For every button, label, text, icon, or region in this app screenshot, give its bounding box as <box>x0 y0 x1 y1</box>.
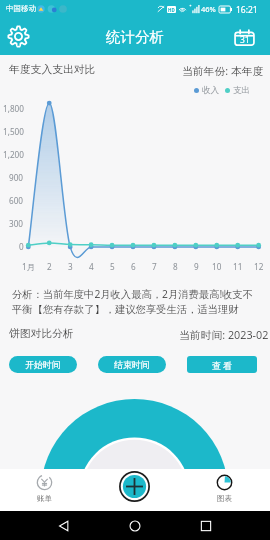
staticText: 10 <box>212 261 222 272</box>
staticText: 7 <box>152 261 157 272</box>
button[interactable]: Settings <box>7 25 30 48</box>
staticText: 9 <box>194 261 199 272</box>
button[interactable]: Back <box>56 518 72 534</box>
staticText: 饼图对比分析 <box>9 327 74 341</box>
staticText: 16:21 <box>236 4 258 16</box>
staticText: 8 <box>173 261 178 272</box>
button[interactable]: 图表 <box>205 474 244 506</box>
staticText: 900 <box>9 172 24 183</box>
button[interactable]: Recents <box>198 518 214 534</box>
staticText: HD <box>168 7 175 13</box>
staticText: 开始时间 <box>25 359 61 370</box>
staticText: 46% <box>201 4 216 14</box>
staticText: 账单 <box>37 494 52 503</box>
staticText: 中国移动 <box>6 4 36 13</box>
staticText: 年度支入支出对比 <box>9 63 96 77</box>
staticText: 4 <box>89 261 94 272</box>
button[interactable]: 结束时间 <box>98 356 166 373</box>
staticText: 300 <box>9 218 24 229</box>
staticText: 12 <box>254 261 264 272</box>
button[interactable]: Add record <box>119 471 150 502</box>
staticText: 1月 <box>22 261 35 272</box>
staticText: 0 <box>19 241 24 252</box>
staticText: 3 <box>68 261 73 272</box>
staticText: 1,500 <box>3 126 24 137</box>
staticText: 5 <box>110 261 115 272</box>
button[interactable]: 查 看 <box>187 356 257 373</box>
staticText: 图表 <box>217 494 232 503</box>
staticText: 600 <box>9 195 24 206</box>
staticText: 1,800 <box>3 103 24 114</box>
staticText: 统计分析 <box>106 28 164 46</box>
staticText: 查 看 <box>212 359 233 371</box>
button[interactable]: 账单 <box>25 474 64 506</box>
button[interactable]: 开始时间 <box>9 356 77 373</box>
button[interactable]: Calendar <box>233 28 256 48</box>
staticText: 当前时间: 2023-02 <box>179 327 269 342</box>
staticText: 2 <box>47 261 52 272</box>
staticText: 6 <box>131 261 136 272</box>
staticText: 收入 <box>202 85 220 96</box>
staticText: 1,200 <box>3 149 24 160</box>
button[interactable]: Home <box>127 518 143 534</box>
staticText: 11 <box>233 261 243 272</box>
staticText: 分析：当前年度中2月收入最高，2月消费最高!收支不平衡【您有存款了】，建议您享受… <box>12 287 258 316</box>
staticText: 结束时间 <box>114 359 150 370</box>
staticText: 支出 <box>233 85 251 96</box>
staticText: 31 <box>240 34 250 46</box>
staticText: 当前年份: 本年度 <box>182 63 264 78</box>
